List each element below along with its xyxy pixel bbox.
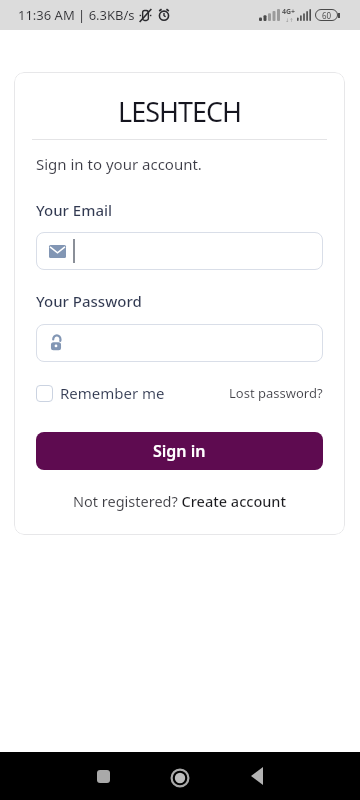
staticText: Sign in to your account.	[36, 154, 202, 174]
staticText: Sign in	[153, 440, 206, 462]
button[interactable]	[36, 232, 323, 270]
button[interactable]	[36, 385, 53, 402]
button[interactable]	[36, 324, 323, 362]
staticText: 4G+	[282, 7, 296, 17]
staticText: Your Email	[36, 200, 113, 220]
button[interactable]: Sign in	[36, 432, 323, 470]
staticText: 11:36 AM | 6.3KB/s	[18, 6, 135, 24]
button[interactable]	[245, 764, 269, 788]
button[interactable]	[91, 764, 115, 788]
staticText: ↓↑	[285, 17, 294, 23]
staticText: LESHTECH	[118, 93, 242, 130]
button[interactable]	[168, 766, 192, 790]
button[interactable]: Not registered? Create account	[36, 491, 323, 511]
staticText: 60	[322, 10, 332, 21]
staticText: Not registered? Create account	[73, 491, 286, 511]
staticText: Lost password?	[229, 384, 323, 402]
button[interactable]: Lost password?	[229, 384, 323, 402]
staticText: Your Password	[36, 291, 142, 311]
staticText: Remember me	[60, 383, 165, 403]
